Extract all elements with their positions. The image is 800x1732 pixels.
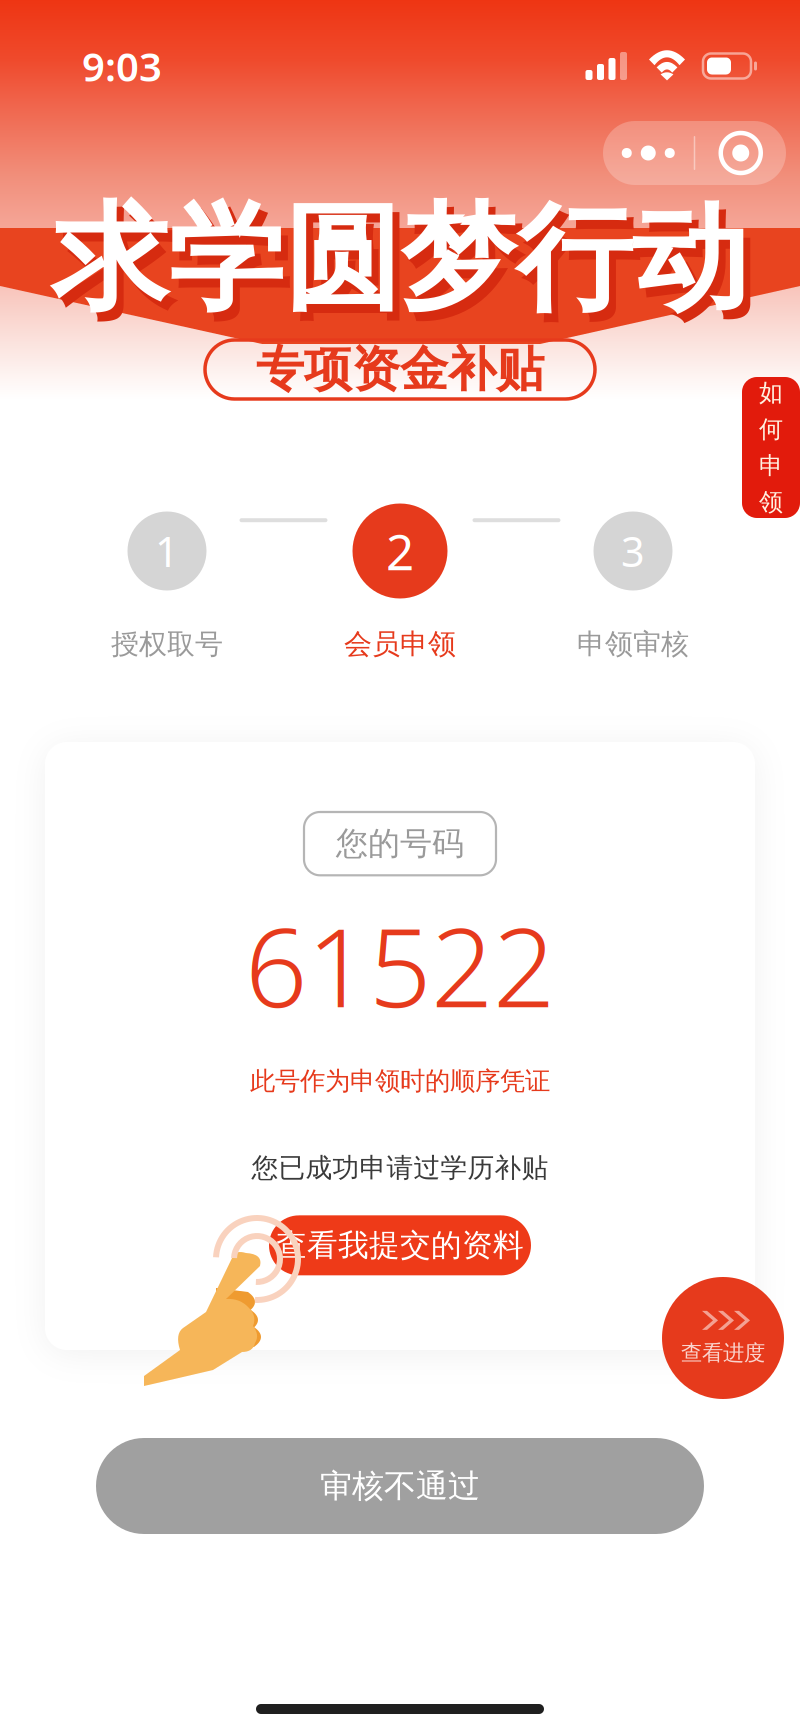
- button[interactable]: 查看我提交的资料: [269, 1215, 531, 1275]
- staticText: 求学圆梦行动: [52, 188, 748, 330]
- staticText: 会员申领: [344, 627, 456, 661]
- staticText: 2: [386, 518, 414, 584]
- staticText: 如: [759, 378, 783, 407]
- staticText: 查看进度: [681, 1340, 765, 1366]
- staticText: 领: [759, 487, 783, 517]
- button[interactable]: Close mini program: [695, 121, 786, 185]
- staticText: 专项资金补贴: [256, 340, 544, 399]
- staticText: 查看我提交的资料: [276, 1226, 524, 1264]
- staticText: 3: [621, 524, 645, 578]
- staticText: 申领审核: [577, 627, 689, 661]
- staticText: 9:03: [82, 39, 162, 92]
- staticText: 61522: [245, 892, 555, 1037]
- button[interactable]: 审核不通过: [96, 1438, 704, 1534]
- staticText: 何: [759, 414, 783, 444]
- button[interactable]: More options: [603, 121, 694, 185]
- staticText: 授权取号: [111, 627, 223, 661]
- staticText: 审核不通过: [320, 1466, 480, 1506]
- staticText: 申: [759, 451, 783, 480]
- staticText: 1: [155, 524, 179, 578]
- staticText: 您已成功申请过学历补贴: [251, 1152, 548, 1184]
- staticText: 此号作为申领时的顺序凭证: [250, 1065, 550, 1097]
- staticText: 您的号码: [336, 824, 464, 863]
- staticText: 求学圆梦行动: [59, 197, 755, 339]
- button[interactable]: 如: [742, 377, 800, 518]
- button[interactable]: 查看进度: [662, 1277, 784, 1399]
